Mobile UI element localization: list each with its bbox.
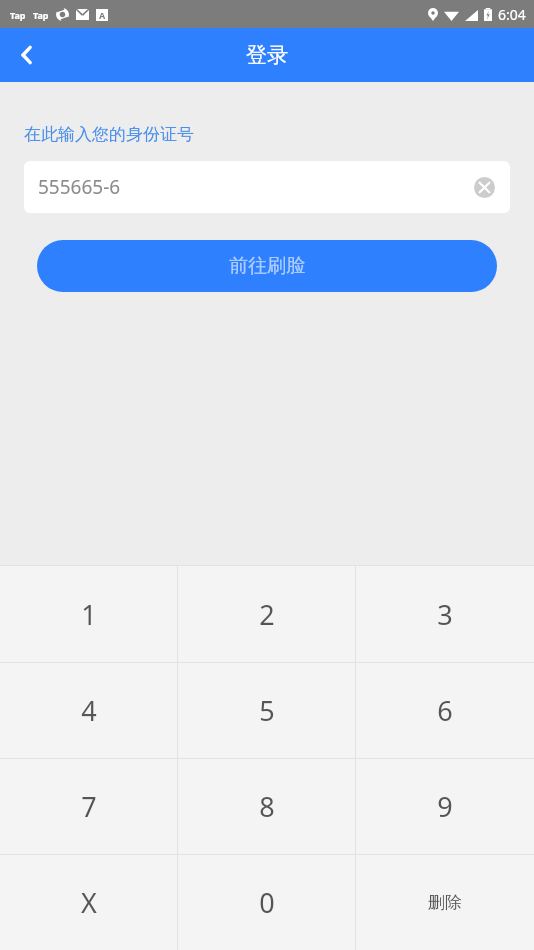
button[interactable]: 3 [356,566,534,662]
staticText: 3 [437,596,453,633]
button[interactable]: 1 [0,566,178,662]
button[interactable]: 5 [178,663,356,758]
button[interactable]: 0 [178,855,356,950]
button[interactable]: 4 [0,663,178,758]
staticText: X [81,884,97,921]
button[interactable]: 9 [356,759,534,854]
staticText: 前往刷脸 [229,254,305,278]
staticText: 6 [437,692,453,729]
staticText: 1 [81,596,97,633]
staticText: 删除 [428,892,462,913]
staticText: 555665-6 [38,174,121,200]
button[interactable]: 2 [178,566,356,662]
button[interactable]: Clear text [468,171,500,203]
button[interactable]: 6 [356,663,534,758]
button[interactable]: X [0,855,178,950]
staticText: 8 [259,788,275,825]
button[interactable]: 前往刷脸 [37,240,497,292]
staticText: 2 [259,596,275,633]
staticText: 7 [81,788,97,825]
staticText: 4 [81,692,97,729]
button[interactable]: Back [0,28,54,82]
staticText: 5 [259,692,275,729]
staticText: 登录 [246,42,288,68]
staticText: Tap [33,9,49,21]
button[interactable]: 8 [178,759,356,854]
button[interactable]: 555665-6 [24,161,510,213]
button[interactable]: 7 [0,759,178,854]
staticText: 0 [259,884,275,921]
staticText: 6:04 [498,5,526,24]
staticText: Tap [10,9,26,21]
staticText: 9 [437,788,453,825]
staticText: A [99,9,106,21]
staticText: 在此输入您的身份证号 [24,124,194,145]
button[interactable]: 删除 [356,855,534,950]
